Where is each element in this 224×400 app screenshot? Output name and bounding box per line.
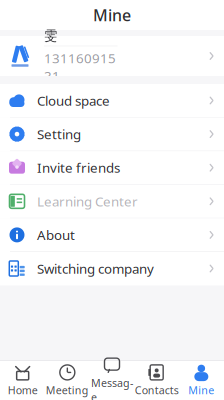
- staticText: Setting: [37, 125, 81, 143]
- button[interactable]: Switching company: [0, 252, 224, 286]
- button[interactable]: Invite friends: [0, 151, 224, 185]
- staticText: Switching company: [37, 260, 154, 277]
- button[interactable]: Home: [1, 362, 45, 398]
- staticText: Contacts: [135, 383, 179, 397]
- button[interactable]: Message: [90, 362, 134, 398]
- staticText: Mine: [188, 383, 214, 397]
- staticText: About: [37, 226, 75, 244]
- button[interactable]: Cloud space: [0, 84, 224, 118]
- button[interactable]: About: [0, 218, 224, 252]
- button[interactable]: Meeting: [45, 362, 89, 398]
- button[interactable]: Contacts: [135, 362, 179, 398]
- staticText: Invite friends: [37, 159, 120, 176]
- staticText: Learning Center: [37, 192, 138, 210]
- staticText: 雯: [44, 27, 57, 44]
- staticText: Cloud space: [37, 92, 110, 109]
- button[interactable]: Learning Center: [0, 185, 224, 218]
- staticText: Home: [8, 383, 38, 397]
- button[interactable]: Mine: [179, 362, 223, 398]
- button[interactable]: 雯: [0, 36, 224, 76]
- staticText: 13116091531: [44, 49, 116, 85]
- button[interactable]: Setting: [0, 118, 224, 151]
- staticText: Meeting: [46, 383, 89, 397]
- staticText: Message: [91, 376, 133, 400]
- staticText: Mine: [93, 4, 131, 26]
